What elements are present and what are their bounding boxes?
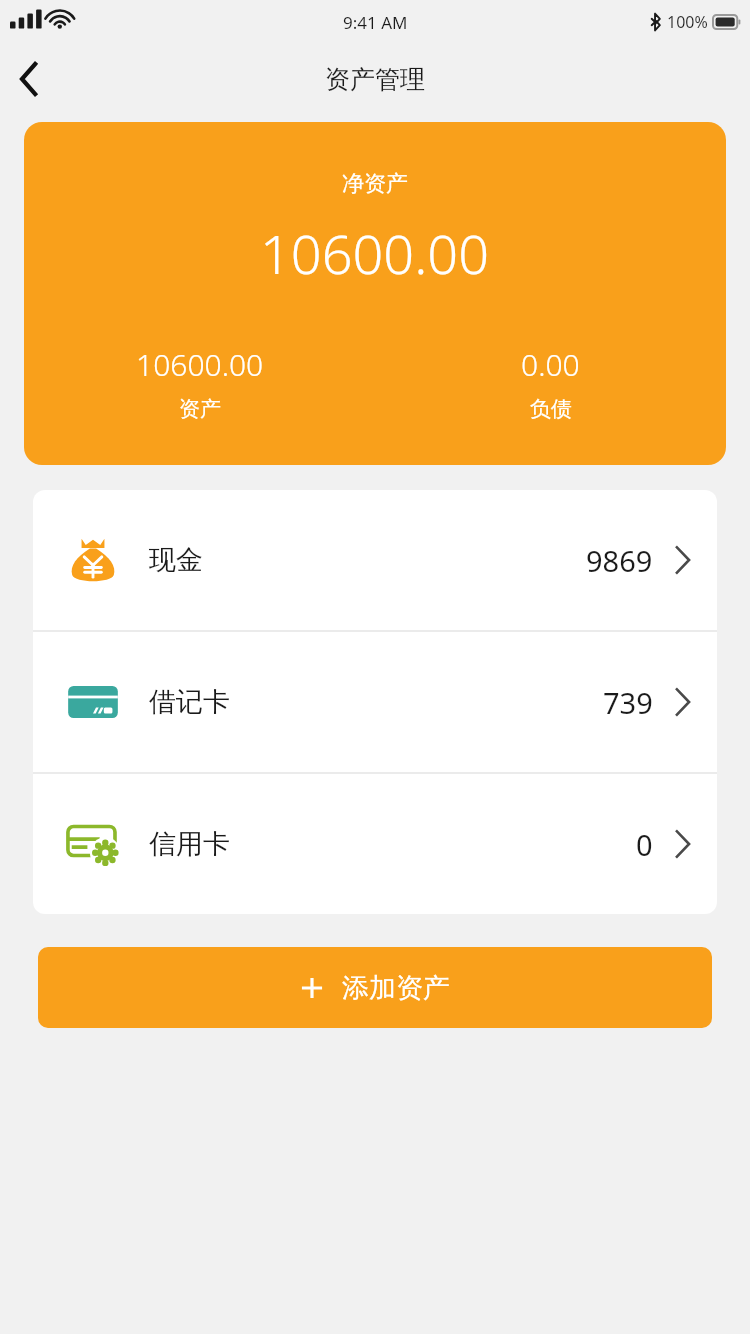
staticText: 资产管理 (325, 64, 425, 95)
button[interactable]: 净资产 (24, 122, 726, 465)
button[interactable]: 借记卡 (33, 632, 717, 772)
staticText: 借记卡 (149, 685, 230, 719)
button[interactable]: 信用卡 (33, 774, 717, 914)
button[interactable]: 添加资产 (38, 947, 712, 1028)
staticText: 信用卡 (149, 827, 230, 861)
button[interactable]: 现金 (33, 490, 717, 630)
staticText: 9869 (586, 541, 653, 580)
staticText: 10600.00 (260, 216, 490, 290)
staticText: 资产 (179, 396, 221, 422)
staticText: 10600.00 (136, 344, 264, 385)
staticText: 100% (667, 11, 708, 33)
staticText: 9:41 AM (343, 11, 408, 34)
staticText: 现金 (149, 543, 203, 577)
staticText: 负债 (530, 396, 572, 422)
staticText: 739 (603, 683, 653, 722)
staticText: 0 (636, 825, 653, 864)
staticText: 0.00 (521, 344, 580, 385)
staticText: 净资产 (342, 170, 408, 198)
staticText: 添加资产 (342, 971, 450, 1005)
button[interactable]: Back (0, 50, 58, 108)
